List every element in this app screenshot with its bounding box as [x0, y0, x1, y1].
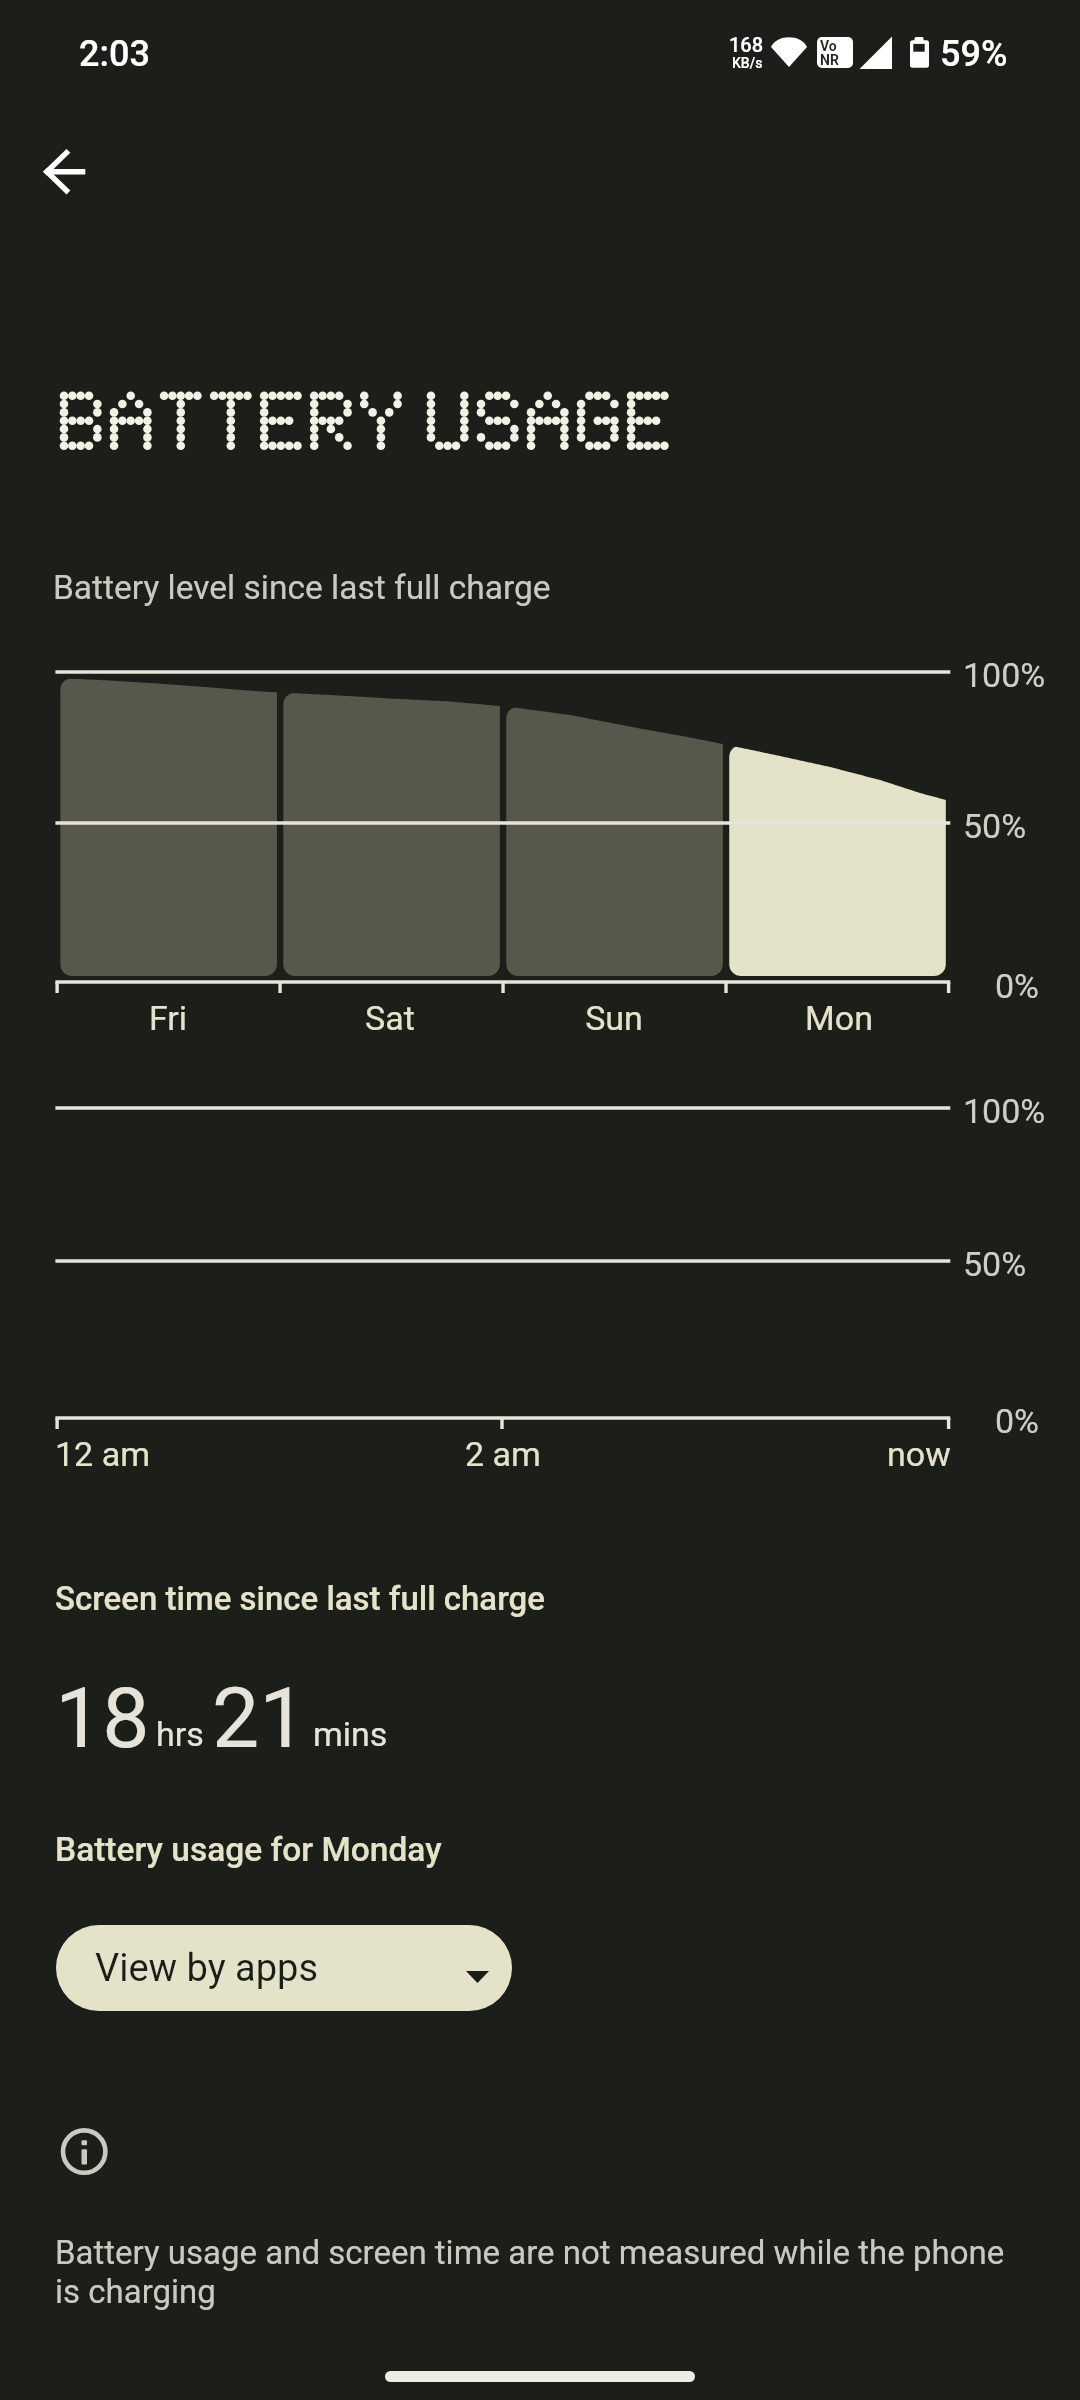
staticText: Fri [59, 998, 277, 1038]
staticText: Screen time since last full charge [55, 1579, 545, 1618]
staticText: Battery usage for Monday [55, 1830, 442, 1869]
staticText: 100% [963, 1091, 1046, 1131]
staticText: Mon [730, 998, 948, 1038]
staticText: View by apps [95, 1946, 319, 1991]
button[interactable]: Back [24, 129, 112, 217]
staticText: 2:03 [79, 33, 150, 75]
staticText: 21 [212, 1669, 307, 1767]
staticText: KB/s [732, 55, 763, 71]
staticText: NR [820, 52, 839, 68]
staticText: hrs [156, 1714, 204, 1754]
staticText: Sun [505, 998, 723, 1038]
staticText: Battery level since last full charge [53, 568, 551, 607]
staticText: 0% [995, 966, 1040, 1006]
staticText: 0% [995, 1401, 1040, 1441]
staticText: 2 am [465, 1434, 541, 1474]
staticText: now [887, 1434, 951, 1474]
button[interactable]: More information [54, 2122, 114, 2182]
staticText: 100% [963, 655, 1046, 695]
staticText: 50% [963, 806, 1027, 846]
staticText: 168 [729, 33, 764, 56]
staticText: 50% [963, 1244, 1027, 1284]
staticText: 59% [940, 33, 1008, 75]
button[interactable]: View by apps [56, 1925, 512, 2011]
staticText: mins [313, 1714, 388, 1754]
staticText: 12 am [55, 1434, 150, 1474]
staticText: 18 [55, 1669, 150, 1767]
staticText: Battery usage and screen time are not me… [55, 2233, 1023, 2311]
staticText: Vo [820, 38, 837, 54]
staticText: Sat [281, 998, 499, 1038]
